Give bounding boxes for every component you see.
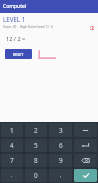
- button[interactable]: Minus: [74, 123, 97, 137]
- staticText: RESET: [13, 52, 24, 57]
- staticText: Score: 30: [3, 25, 17, 29]
- button[interactable]: 4: [1, 139, 23, 152]
- button[interactable]: Next field: [74, 139, 97, 152]
- staticText: .: [11, 172, 13, 179]
- button[interactable]: 8: [25, 154, 47, 167]
- staticText: 3: [59, 126, 63, 135]
- staticText: 5: [34, 141, 38, 150]
- button[interactable]: 6: [49, 139, 72, 152]
- staticText: 9: [59, 156, 63, 165]
- staticText: :2: [90, 25, 94, 31]
- button[interactable]: 3: [49, 123, 72, 137]
- button[interactable]: 1: [1, 123, 23, 137]
- button[interactable]: ,: [49, 169, 72, 182]
- staticText: 12 / 2 =: [6, 35, 26, 43]
- staticText: LEVEL 1: [3, 15, 26, 23]
- staticText: Computel: [3, 3, 27, 10]
- button[interactable]: Enter: [74, 169, 97, 182]
- staticText: ,: [60, 172, 62, 179]
- staticText: 2: [34, 126, 38, 135]
- button[interactable]: [38, 49, 56, 59]
- staticText: 8: [34, 156, 38, 165]
- staticText: 4: [10, 141, 14, 150]
- button[interactable]: 7: [1, 154, 23, 167]
- button[interactable]: .: [1, 169, 23, 182]
- staticText: High Score (Level 1): 0: [20, 25, 53, 29]
- button[interactable]: RESET: [5, 49, 32, 59]
- button[interactable]: 2: [25, 123, 47, 137]
- staticText: 7: [10, 156, 14, 165]
- button[interactable]: 5: [25, 139, 47, 152]
- button[interactable]: Backspace: [74, 154, 97, 167]
- button[interactable]: 9: [49, 154, 72, 167]
- staticText: 6: [59, 141, 63, 150]
- button[interactable]: 0: [25, 169, 47, 182]
- staticText: 1: [10, 126, 14, 135]
- staticText: 0: [34, 171, 38, 180]
